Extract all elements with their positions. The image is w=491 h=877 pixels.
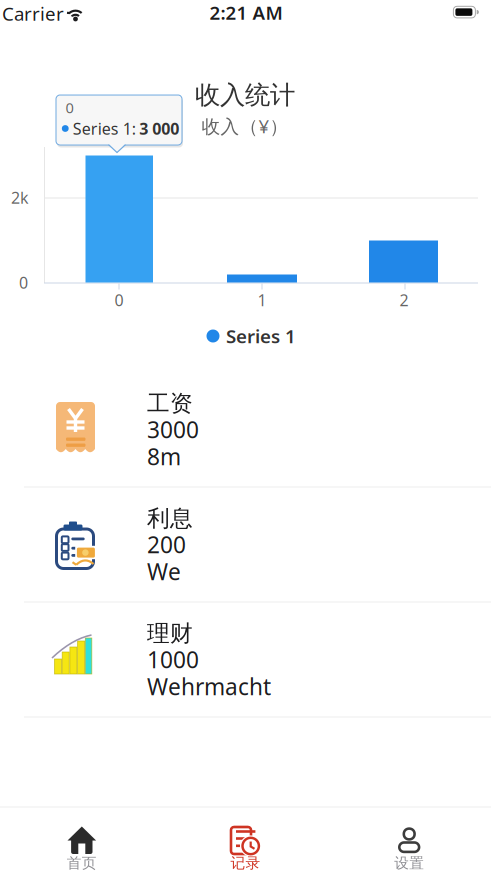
staticText: We bbox=[147, 556, 181, 586]
staticText: 0 bbox=[65, 98, 73, 117]
staticText: Wehrmacht bbox=[147, 671, 271, 701]
staticText: 利息 bbox=[147, 504, 193, 532]
staticText: 8m bbox=[147, 441, 181, 471]
staticText: 2:21 AM bbox=[209, 0, 282, 25]
staticText: 0 bbox=[114, 289, 123, 311]
staticText: 1 bbox=[257, 289, 266, 311]
staticText: Carrier bbox=[2, 1, 64, 26]
staticText: 记录 bbox=[230, 854, 260, 872]
staticText: 收入统计 bbox=[195, 79, 295, 110]
button[interactable]: 理财 bbox=[0, 602, 491, 717]
staticText: 工资 bbox=[147, 389, 193, 417]
staticText: 2k bbox=[11, 187, 29, 208]
button[interactable]: 工资 bbox=[0, 372, 491, 487]
staticText: 200 bbox=[147, 529, 186, 559]
button[interactable]: 记录 bbox=[164, 810, 327, 876]
button[interactable]: 利息 bbox=[0, 487, 491, 602]
staticText: 收入（¥） bbox=[201, 114, 288, 138]
staticText: 首页 bbox=[67, 854, 97, 872]
staticText: 3000 bbox=[147, 414, 199, 444]
staticText: 理财 bbox=[147, 619, 193, 647]
staticText: 设置 bbox=[394, 854, 424, 872]
staticText: 3 000 bbox=[139, 118, 179, 139]
staticText: 0 bbox=[19, 272, 28, 293]
staticText: Series 1: bbox=[73, 118, 136, 139]
button[interactable]: 首页 bbox=[0, 810, 164, 876]
button[interactable]: 设置 bbox=[327, 810, 491, 876]
staticText: Series 1 bbox=[226, 324, 296, 348]
staticText: 2 bbox=[399, 289, 408, 311]
staticText: 1000 bbox=[147, 644, 199, 674]
